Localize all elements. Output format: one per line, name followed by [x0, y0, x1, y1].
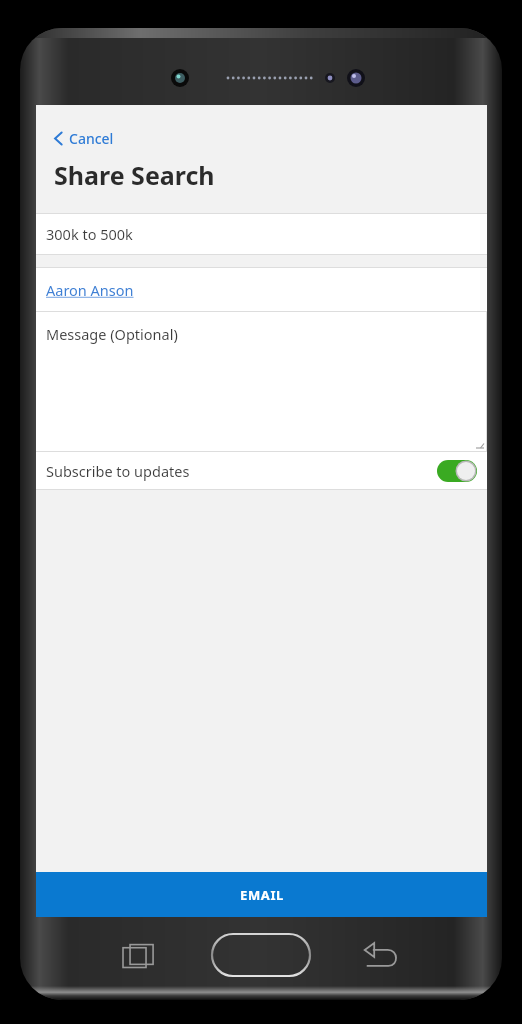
button[interactable]: Back: [352, 934, 410, 976]
staticText: Message (Optional): [46, 324, 178, 344]
button[interactable]: Home: [205, 930, 317, 980]
staticText: Aaron Anson: [46, 280, 134, 300]
staticText: EMAIL: [240, 886, 284, 904]
staticText: Share Search: [54, 158, 215, 192]
staticText: Subscribe to updates: [46, 461, 437, 481]
staticText: Cancel: [69, 129, 114, 148]
button[interactable]: 300k to 500k: [36, 214, 487, 254]
button[interactable]: Message (Optional): [36, 312, 487, 451]
button[interactable]: Aaron Anson: [36, 268, 487, 311]
button[interactable]: Recent apps: [110, 934, 168, 976]
button[interactable]: Subscribe to updates: [36, 452, 487, 489]
button[interactable]: Subscribe to updates toggle: [437, 460, 477, 482]
staticText: 300k to 500k: [46, 224, 133, 244]
button[interactable]: EMAIL: [36, 872, 487, 917]
button[interactable]: Cancel: [46, 125, 122, 152]
